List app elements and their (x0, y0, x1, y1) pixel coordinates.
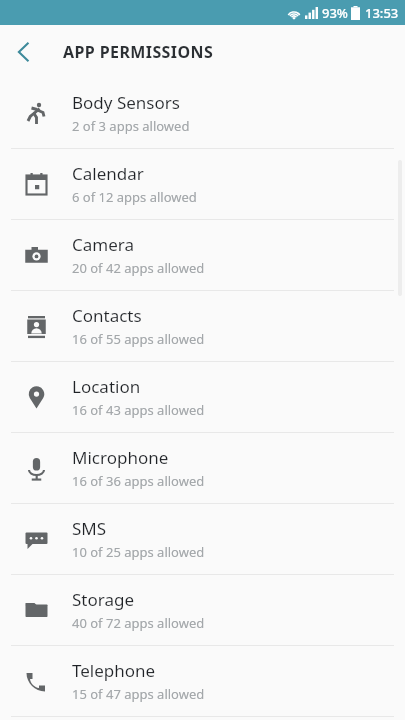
staticText: 20 of 42 apps allowed (72, 259, 205, 277)
staticText: 6 of 12 apps allowed (72, 188, 197, 206)
staticText: Location (72, 375, 141, 398)
staticText: Camera (72, 233, 134, 256)
button[interactable]: Telephone (0, 646, 405, 716)
button[interactable]: Calendar (0, 149, 405, 219)
staticText: 93% (322, 4, 348, 22)
staticText: Telephone (72, 659, 156, 682)
staticText: 16 of 43 apps allowed (72, 401, 205, 419)
staticText: 15 of 47 apps allowed (72, 685, 205, 703)
staticText: SMS (72, 517, 107, 540)
staticText: 2 of 3 apps allowed (72, 117, 190, 135)
staticText: APP PERMISSIONS (63, 41, 214, 63)
staticText: 16 of 55 apps allowed (72, 330, 205, 348)
staticText: Body Sensors (72, 91, 180, 114)
staticText: 40 of 72 apps allowed (72, 614, 205, 632)
button[interactable]: Back (0, 28, 48, 76)
staticText: Contacts (72, 304, 142, 327)
staticText: 10 of 25 apps allowed (72, 543, 205, 561)
button[interactable]: Storage (0, 575, 405, 645)
button[interactable]: Body Sensors (0, 78, 405, 148)
button[interactable]: Camera (0, 220, 405, 290)
staticText: 16 of 36 apps allowed (72, 472, 205, 490)
button[interactable]: SMS (0, 504, 405, 574)
staticText: Microphone (72, 446, 169, 469)
button[interactable]: Microphone (0, 433, 405, 503)
button[interactable]: Location (0, 362, 405, 432)
staticText: Storage (72, 588, 135, 611)
staticText: Calendar (72, 162, 144, 185)
staticText: 13:53 (365, 4, 399, 22)
button[interactable]: Contacts (0, 291, 405, 361)
